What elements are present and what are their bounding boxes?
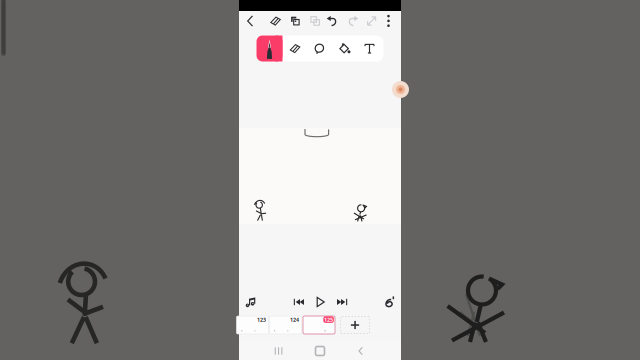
button[interactable]: Text [358,37,380,59]
button[interactable]: Redo [343,11,363,31]
staticText: 124 [290,316,299,323]
button[interactable]: Eraser [284,37,306,59]
button[interactable]: 123 [236,316,268,334]
button[interactable]: Recents [266,342,292,360]
button[interactable]: More options [380,11,396,31]
button[interactable]: Pen [256,35,282,61]
button[interactable]: Onion skin [378,291,400,313]
button[interactable]: Add frame [340,316,370,334]
button[interactable]: Paste frame [305,11,325,31]
button[interactable]: Audio [240,291,262,313]
button[interactable]: Fill [333,37,355,59]
button[interactable]: Undo [322,11,342,31]
button[interactable]: Previous frame [287,291,309,313]
button[interactable]: Back [348,342,374,360]
button[interactable]: Duplicate frame [285,11,305,31]
button[interactable]: Home [307,342,333,360]
button[interactable]: 125 [303,316,335,334]
button[interactable]: Resize canvas [361,11,381,31]
button[interactable]: Next frame [331,291,353,313]
button[interactable]: Erase [265,11,285,31]
button[interactable]: 124 [269,316,301,334]
staticText: 125 [324,316,333,323]
button[interactable]: Lasso select [308,37,330,59]
button[interactable]: Play [309,291,331,313]
staticText: 123 [257,316,266,323]
button[interactable]: Back [240,11,260,31]
